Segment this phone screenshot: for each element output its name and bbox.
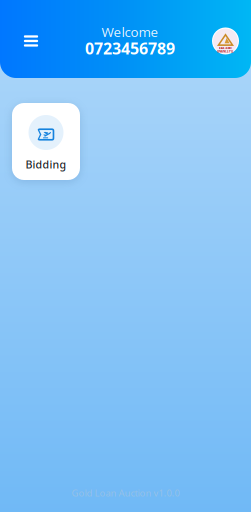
staticText: 0723456789 xyxy=(85,38,175,59)
staticText: FINANCE PLC xyxy=(217,50,234,53)
staticText: Gold Loan Auction v1.0.0 xyxy=(71,487,179,499)
staticText: Bidding xyxy=(25,157,66,171)
button[interactable]: Bidding xyxy=(12,103,80,180)
staticText: Welcome xyxy=(101,23,158,41)
button[interactable]: Menu xyxy=(14,28,48,54)
staticText: ASIA ASSET xyxy=(218,46,232,50)
